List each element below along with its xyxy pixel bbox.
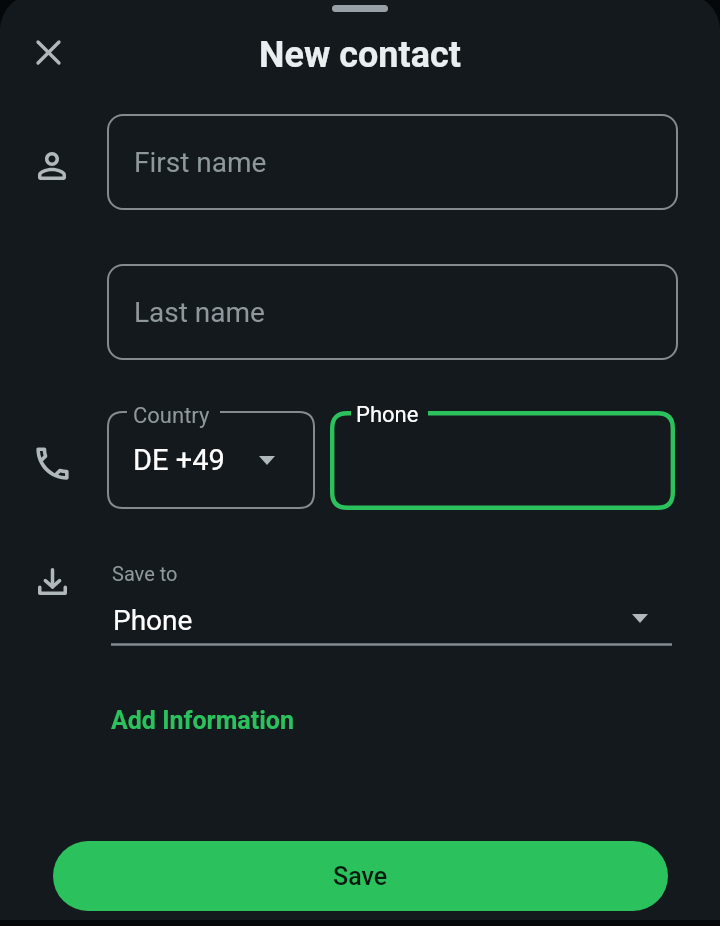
staticText: Country — [133, 403, 210, 429]
button[interactable]: Country — [107, 397, 315, 509]
button[interactable]: First name — [107, 114, 678, 210]
button[interactable]: Add Information — [101, 698, 304, 743]
staticText: Add Information — [111, 706, 294, 735]
button[interactable]: Close — [18, 22, 79, 83]
button[interactable]: Last name — [107, 264, 678, 360]
staticText: Phone — [113, 604, 193, 637]
staticText: DE +49 — [133, 443, 225, 477]
staticText: First name — [134, 146, 267, 179]
staticText: Phone — [356, 402, 419, 428]
staticText: Save — [333, 862, 388, 891]
button[interactable]: Save — [53, 841, 668, 911]
staticText: Save to — [112, 562, 178, 585]
button[interactable]: Phone — [330, 397, 675, 510]
staticText: Last name — [134, 296, 265, 329]
button[interactable]: Save to account — [111, 556, 672, 646]
staticText: New contact — [0, 34, 720, 76]
button[interactable]: Drag handle — [332, 5, 388, 12]
